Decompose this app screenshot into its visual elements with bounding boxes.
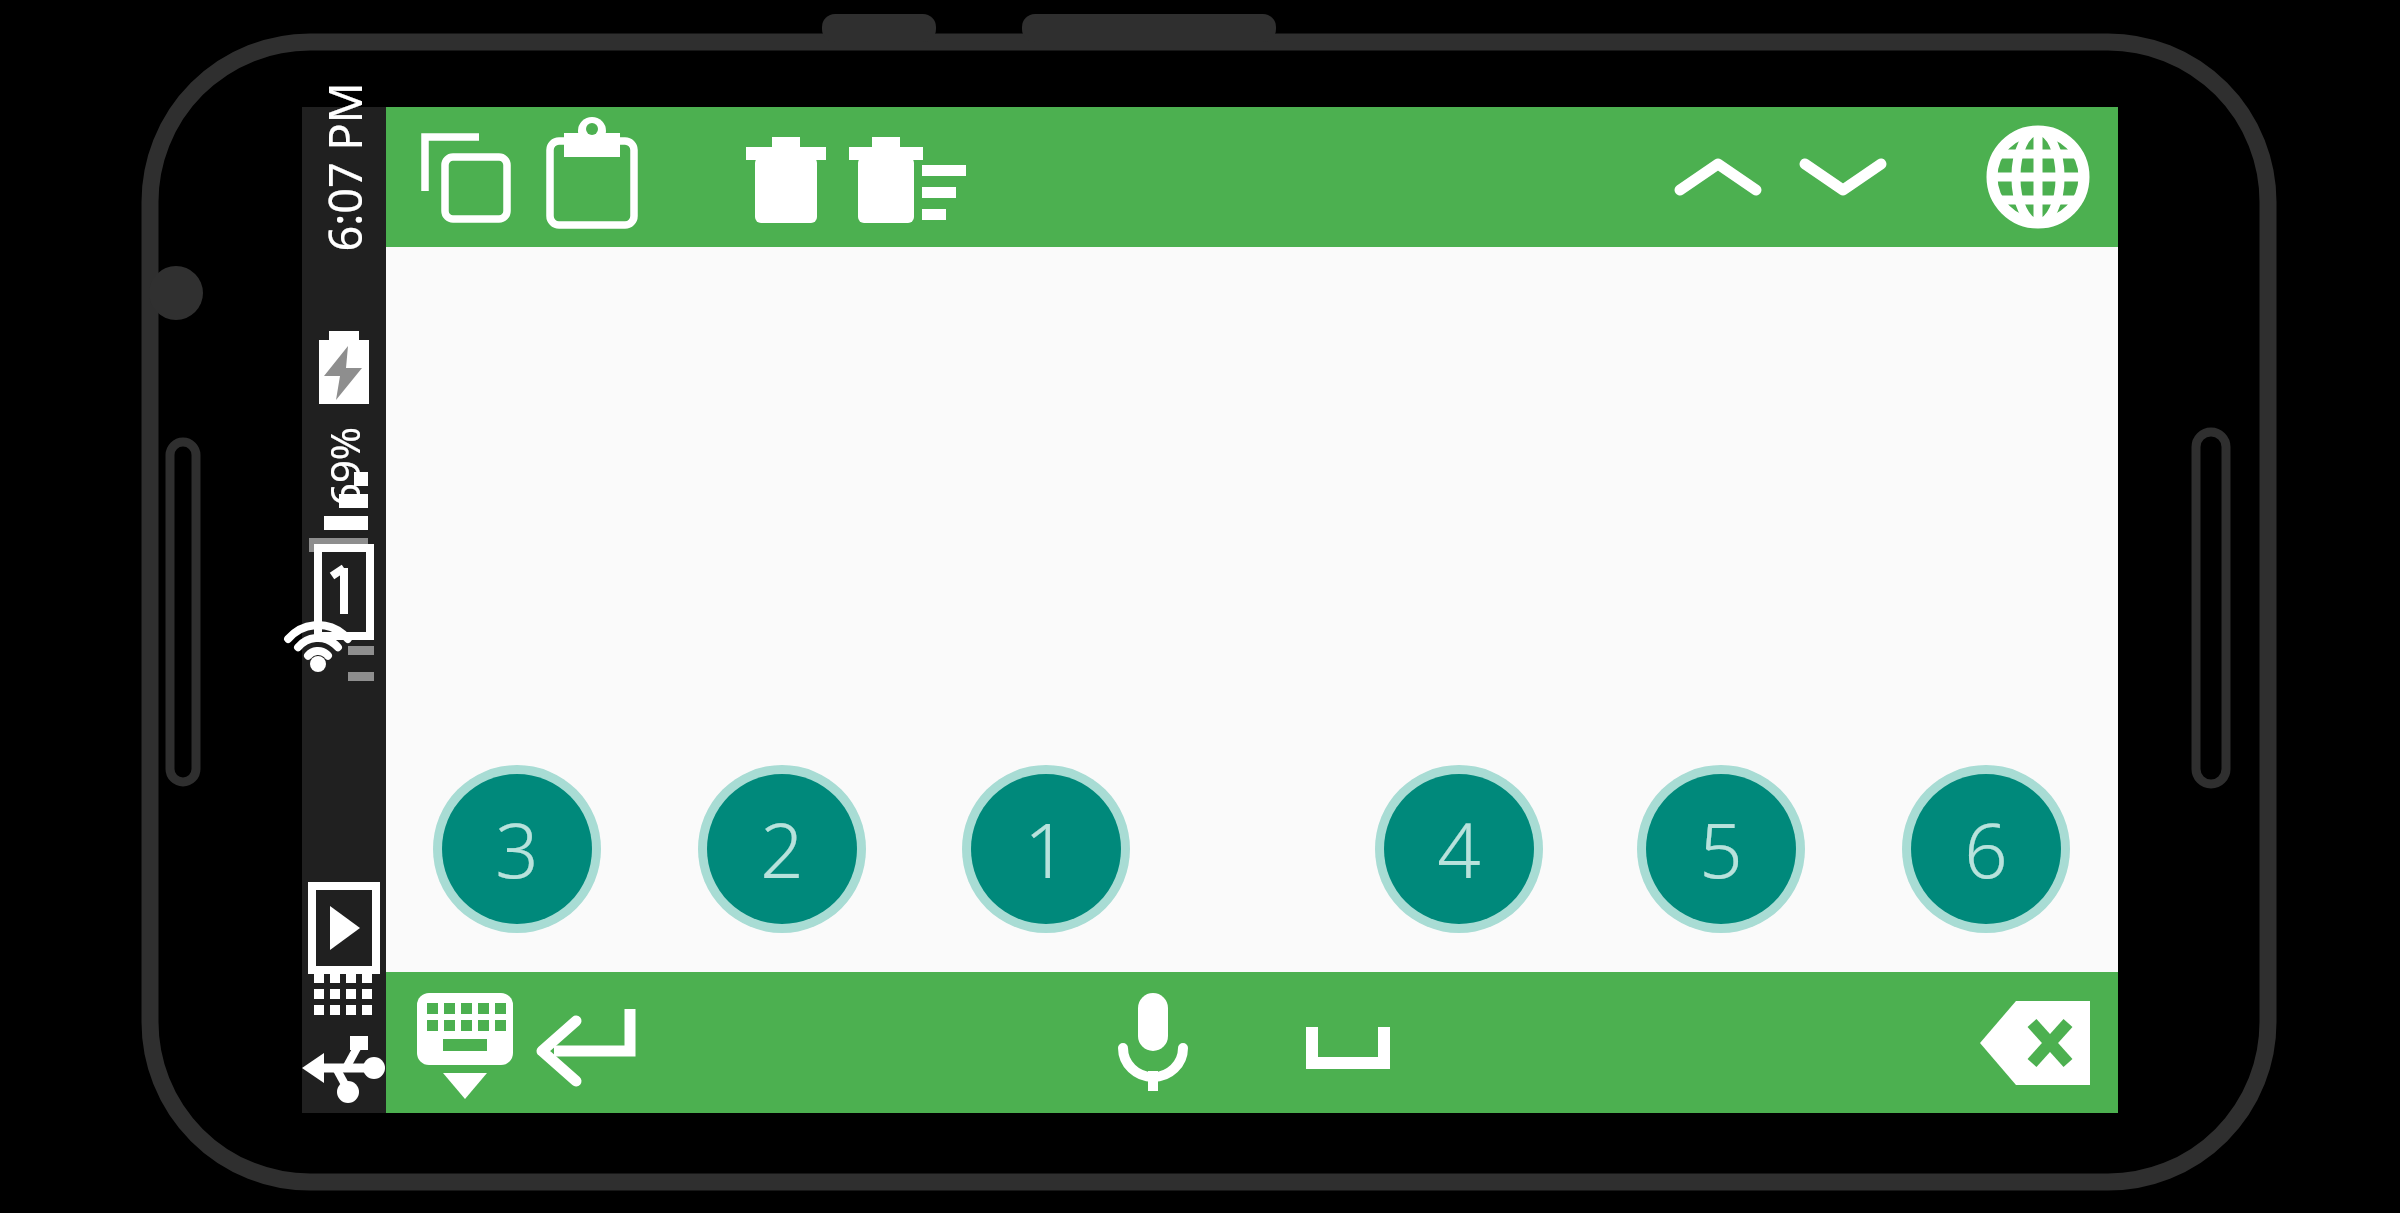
staticText: 4 xyxy=(1437,797,1481,901)
button[interactable]: Hide keyboard xyxy=(399,977,531,1109)
button[interactable]: Paste xyxy=(526,111,658,243)
button[interactable]: Copy xyxy=(399,111,531,243)
button[interactable]: 3 xyxy=(442,774,592,924)
button[interactable]: 2 xyxy=(707,774,857,924)
staticText: 6 xyxy=(1964,797,2008,901)
button[interactable]: 5 xyxy=(1646,774,1796,924)
staticText: 2 xyxy=(760,797,804,901)
button[interactable]: Delete xyxy=(720,111,852,243)
button[interactable]: Backspace xyxy=(1972,977,2104,1109)
staticText: 1 xyxy=(1024,797,1068,901)
button[interactable]: 6 xyxy=(1911,774,2061,924)
staticText: 69% xyxy=(317,427,371,506)
button[interactable]: 1 xyxy=(971,774,1121,924)
button[interactable]: Enter xyxy=(520,977,652,1109)
staticText: 3 xyxy=(495,797,539,901)
staticText: 6:07 PM xyxy=(314,82,375,252)
button[interactable]: Change language xyxy=(1972,111,2104,243)
button[interactable]: 4 xyxy=(1384,774,1534,924)
button[interactable]: Space xyxy=(1282,977,1414,1109)
button[interactable]: Scroll up xyxy=(1652,111,1784,243)
button[interactable]: Delete all xyxy=(827,111,959,243)
button[interactable]: Voice input xyxy=(1087,977,1219,1109)
staticText: 5 xyxy=(1699,797,1743,901)
button[interactable]: Scroll down xyxy=(1777,111,1909,243)
